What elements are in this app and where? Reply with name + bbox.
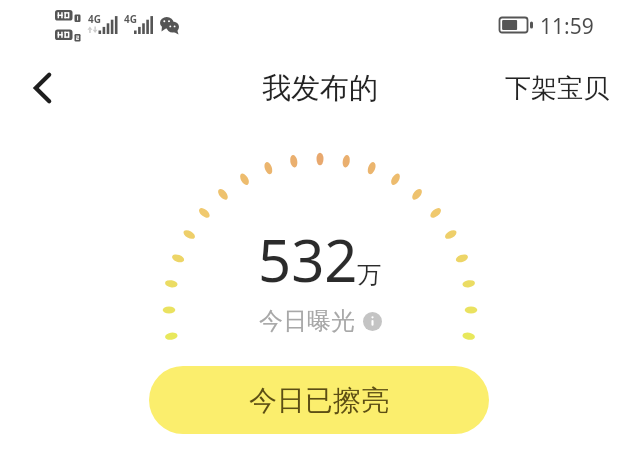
staticText: 今日曝光	[259, 306, 355, 336]
staticText: 4G	[124, 12, 137, 26]
button[interactable]: 今日已擦亮	[149, 366, 489, 434]
staticText: 4G	[88, 12, 101, 26]
staticText: 今日已擦亮	[249, 383, 389, 418]
button[interactable]: Info	[363, 312, 382, 331]
staticText: 下架宝贝	[505, 72, 609, 105]
staticText: 我发布的	[262, 70, 378, 107]
button[interactable]: 下架宝贝	[489, 62, 640, 115]
staticText: 11:59	[540, 12, 594, 41]
staticText: 532	[258, 220, 358, 299]
staticText: 万	[357, 260, 381, 290]
button[interactable]: Back	[13, 60, 69, 116]
